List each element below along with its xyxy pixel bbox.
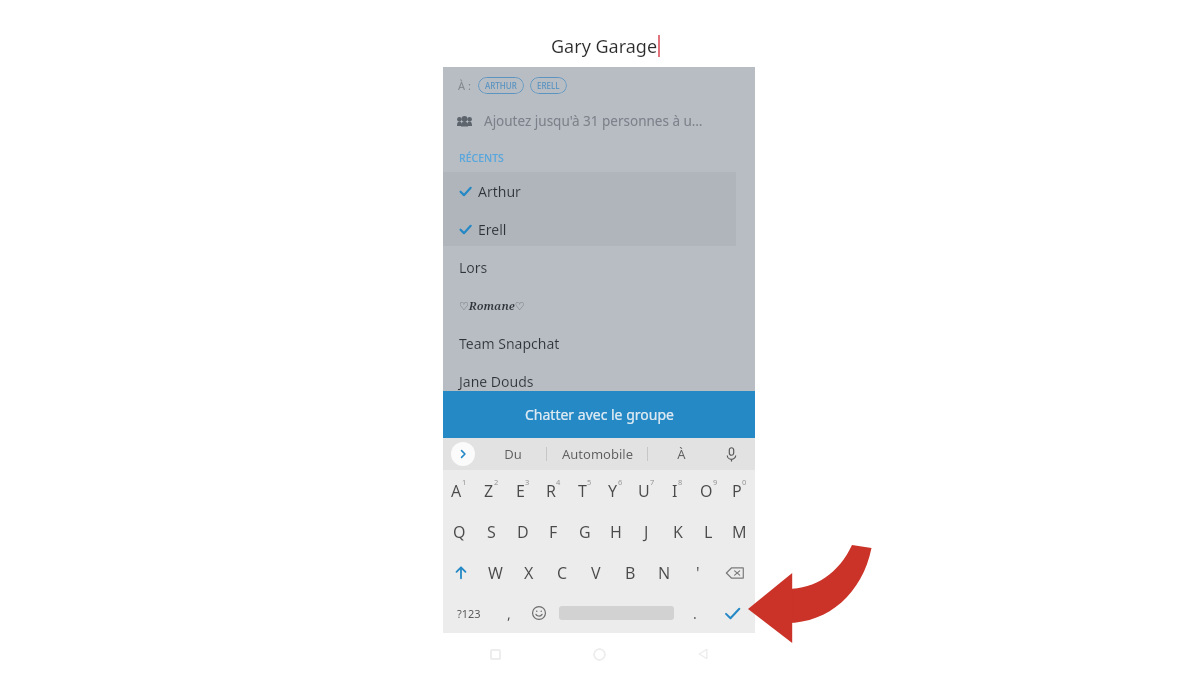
staticText: 6 [618, 477, 623, 487]
staticText: Q [453, 521, 466, 543]
button[interactable]: K [662, 511, 693, 552]
staticText: ♡Romane♡ [459, 298, 525, 313]
button[interactable]: E [507, 470, 538, 511]
staticText: RÉCENTS [459, 151, 504, 165]
staticText: Lors [459, 258, 488, 277]
button[interactable]: Z [475, 470, 507, 511]
staticText: C [557, 562, 568, 584]
staticText: K [673, 521, 683, 543]
staticText: ' [696, 562, 700, 584]
button[interactable]: Erell [443, 210, 755, 248]
staticText: Erell [478, 220, 507, 239]
staticText: V [591, 562, 601, 584]
button[interactable]: V [579, 552, 613, 593]
button[interactable]: ?123 [443, 593, 495, 633]
button[interactable]: Shift [443, 552, 479, 593]
button[interactable]: I [662, 470, 693, 511]
staticText: Chatter avec le groupe [525, 405, 674, 424]
staticText: F [549, 521, 558, 543]
button[interactable]: O [693, 470, 724, 511]
staticText: J [644, 521, 649, 543]
button[interactable]: , [495, 593, 523, 633]
button[interactable]: ERELL [530, 77, 567, 94]
staticText: 4 [556, 477, 561, 487]
button[interactable]: Y [600, 470, 631, 511]
staticText: 3 [525, 477, 530, 487]
button[interactable]: C [545, 552, 579, 593]
staticText: 2 [494, 477, 499, 487]
button[interactable]: Lors [443, 248, 755, 286]
staticText: A [451, 480, 462, 502]
button[interactable]: Backspace [715, 552, 755, 593]
staticText: Z [484, 480, 494, 502]
staticText: Ajoutez jusqu'à 31 personnes à u… [484, 112, 703, 130]
button[interactable]: Q [443, 511, 475, 552]
staticText: À [677, 445, 686, 463]
button[interactable]: N [647, 552, 681, 593]
button[interactable]: R [538, 470, 569, 511]
button[interactable]: Done [710, 593, 755, 633]
staticText: Team Snapchat [459, 334, 560, 353]
button[interactable]: X [512, 552, 545, 593]
staticText: ERELL [537, 80, 560, 91]
button[interactable]: B [613, 552, 647, 593]
staticText: D [517, 521, 529, 543]
button[interactable]: More suggestions [451, 442, 475, 466]
staticText: 8 [678, 477, 683, 487]
button[interactable]: Chatter avec le groupe [443, 391, 755, 438]
staticText: 1 [462, 477, 467, 487]
staticText: Automobile [562, 445, 633, 463]
button[interactable]: . [679, 593, 710, 633]
staticText: 0 [742, 477, 747, 487]
button[interactable]: ' [681, 552, 715, 593]
staticText: Du [504, 445, 522, 463]
button[interactable]: U [631, 470, 662, 511]
button[interactable]: T [569, 470, 600, 511]
staticText: W [488, 562, 503, 584]
button[interactable]: À [648, 438, 715, 470]
button[interactable]: Automobile [547, 438, 647, 470]
staticText: L [704, 521, 713, 543]
button[interactable]: ARTHUR [478, 77, 524, 94]
button[interactable]: L [693, 511, 724, 552]
button[interactable]: Emoji [523, 593, 554, 633]
button[interactable]: S [475, 511, 507, 552]
staticText: G [579, 521, 591, 543]
button[interactable]: Space [554, 593, 679, 633]
button[interactable]: H [600, 511, 631, 552]
button[interactable]: P [724, 470, 755, 511]
button[interactable]: Voice input [715, 438, 747, 470]
button[interactable]: Du [479, 438, 546, 470]
staticText: R [546, 480, 556, 502]
staticText: P [732, 480, 742, 502]
button[interactable]: ♡Romane♡ [443, 286, 755, 324]
staticText: B [625, 562, 636, 584]
button[interactable]: D [507, 511, 538, 552]
staticText: N [658, 562, 671, 584]
button[interactable]: Arthur [443, 172, 755, 210]
staticText: ?123 [457, 606, 481, 621]
button[interactable]: G [569, 511, 600, 552]
staticText: À : [458, 78, 471, 93]
staticText: H [610, 521, 622, 543]
button[interactable]: F [538, 511, 569, 552]
staticText: S [487, 521, 496, 543]
button[interactable]: J [631, 511, 662, 552]
button[interactable]: Team Snapchat [443, 324, 755, 362]
button[interactable]: A [443, 470, 475, 511]
staticText: , [507, 604, 511, 623]
staticText: T [578, 480, 587, 502]
staticText: E [516, 480, 525, 502]
button[interactable]: Ajoutez jusqu'à 31 personnes à u… [443, 103, 755, 139]
staticText: 7 [650, 477, 655, 487]
button[interactable]: M [724, 511, 755, 552]
staticText: 5 [587, 477, 592, 487]
button[interactable]: W [479, 552, 512, 593]
staticText: I [672, 480, 678, 502]
button[interactable]: Jane Douds [443, 362, 755, 400]
staticText: Arthur [478, 182, 521, 201]
staticText: U [638, 480, 650, 502]
